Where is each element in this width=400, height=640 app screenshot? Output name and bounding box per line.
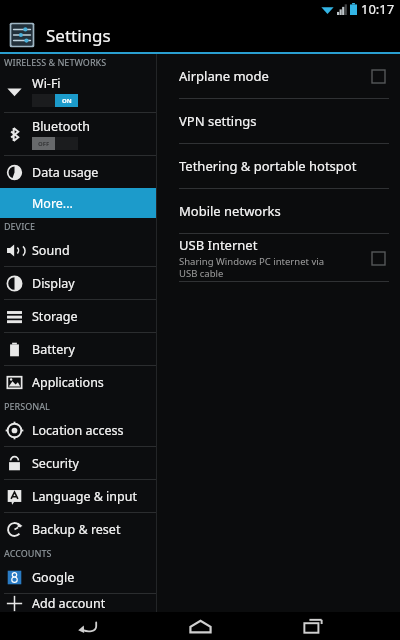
staticText: PERSONAL xyxy=(4,400,50,412)
staticText: Settings xyxy=(46,24,111,47)
button[interactable]: Recent apps xyxy=(287,612,339,640)
button[interactable]: Bluetooth xyxy=(0,113,156,155)
button[interactable]: Add account xyxy=(0,594,156,612)
button[interactable]: Airplane mode xyxy=(179,54,389,98)
staticText: Applications xyxy=(32,374,104,391)
button[interactable]: VPN settings xyxy=(179,99,389,143)
staticText: Tethering & portable hotspot xyxy=(179,157,389,175)
staticText: OFF xyxy=(38,140,50,148)
staticText: Storage xyxy=(32,308,78,325)
button[interactable]: Back xyxy=(61,612,113,640)
staticText: WIRELESS & NETWORKS xyxy=(4,56,107,68)
staticText: Battery xyxy=(32,341,75,358)
staticText: Google xyxy=(32,569,75,586)
staticText: Display xyxy=(32,275,75,292)
staticText: Airplane mode xyxy=(179,67,367,85)
button[interactable]: Tethering & portable hotspot xyxy=(179,144,389,188)
button[interactable]: Google xyxy=(0,561,156,593)
button[interactable]: Battery xyxy=(0,333,156,365)
staticText: Location access xyxy=(32,422,124,439)
staticText: DEVICE xyxy=(4,220,36,232)
button[interactable]: Display xyxy=(0,267,156,299)
staticText: ON xyxy=(62,97,72,105)
button[interactable]: Language & input xyxy=(0,480,156,512)
button[interactable]: Mobile networks xyxy=(179,189,389,233)
button[interactable]: Security xyxy=(0,447,156,479)
button[interactable]: ON xyxy=(32,94,78,107)
button[interactable]: USB Internet xyxy=(179,234,389,281)
staticText: Wi-Fi xyxy=(32,75,61,92)
staticText: Security xyxy=(32,455,79,472)
button[interactable]: Backup & reset xyxy=(0,513,156,545)
button[interactable]: Checkbox xyxy=(367,247,389,269)
staticText: VPN settings xyxy=(179,112,389,130)
staticText: More... xyxy=(32,195,73,212)
staticText: Backup & reset xyxy=(32,521,121,538)
button[interactable]: Home xyxy=(174,612,226,640)
button[interactable]: Checkbox xyxy=(367,65,389,87)
staticText: Data usage xyxy=(32,164,99,181)
other: Settings app icon xyxy=(8,21,36,49)
staticText: USB Internet xyxy=(179,236,258,254)
button[interactable]: Wi-Fi xyxy=(0,70,156,112)
staticText: Add account xyxy=(32,595,106,612)
staticText: Sharing Windows PC internet via USB cabl… xyxy=(179,255,325,279)
button[interactable]: Storage xyxy=(0,300,156,332)
button[interactable]: OFF xyxy=(32,137,78,150)
staticText: Mobile networks xyxy=(179,202,389,220)
button[interactable]: Location access xyxy=(0,414,156,446)
button[interactable]: Data usage xyxy=(0,156,156,188)
staticText: Bluetooth xyxy=(32,118,91,135)
button[interactable]: Applications xyxy=(0,366,156,398)
staticText: ACCOUNTS xyxy=(4,547,52,559)
staticText: Language & input xyxy=(32,488,137,505)
staticText: Sound xyxy=(32,242,70,259)
button[interactable]: More... xyxy=(0,188,156,218)
staticText: 10:17 xyxy=(361,0,395,18)
button[interactable]: Sound xyxy=(0,234,156,266)
